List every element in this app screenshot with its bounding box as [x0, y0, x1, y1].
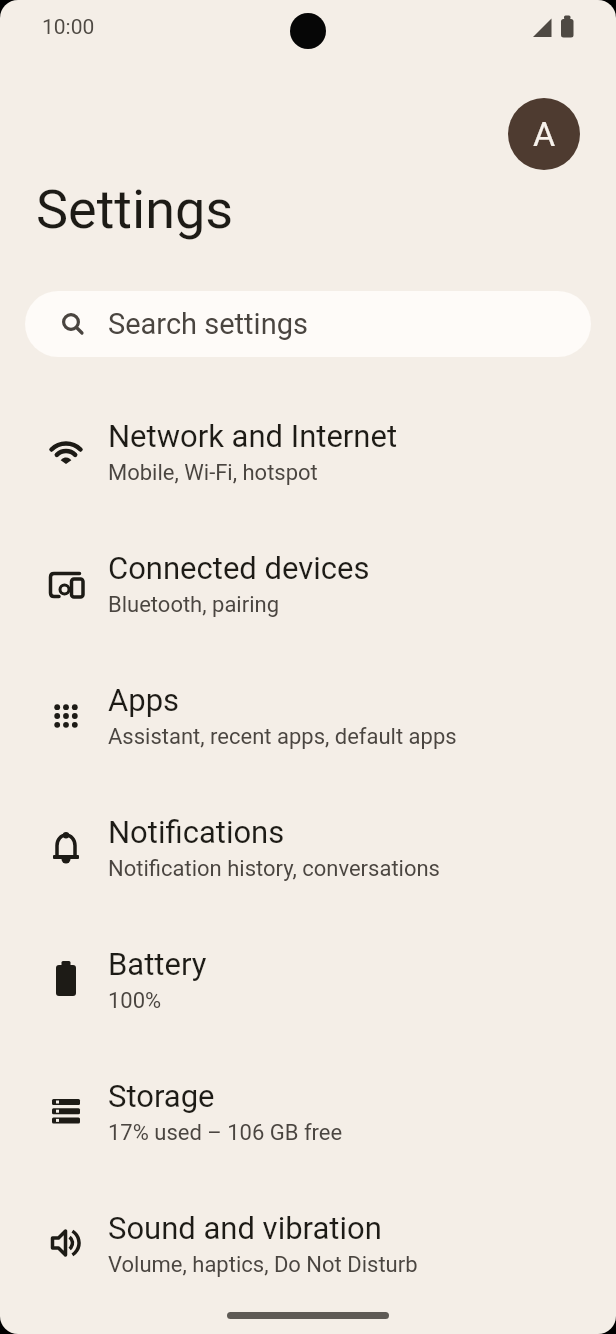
- staticText: Bluetooth, pairing: [108, 592, 280, 618]
- staticText: Settings: [36, 178, 234, 241]
- button[interactable]: Notifications: [0, 782, 616, 914]
- button[interactable]: Sound and vibration: [0, 1178, 616, 1310]
- staticText: Apps: [108, 682, 180, 718]
- staticText: Network and Internet: [108, 418, 398, 454]
- staticText: Connected devices: [108, 550, 370, 586]
- staticText: 17% used – 106 GB free: [108, 1120, 343, 1146]
- staticText: Battery: [108, 946, 207, 982]
- button[interactable]: Search settings: [25, 291, 591, 357]
- staticText: A: [533, 114, 556, 154]
- staticText: Sound and vibration: [108, 1210, 382, 1246]
- staticText: Assistant, recent apps, default apps: [108, 724, 457, 750]
- button[interactable]: Storage: [0, 1046, 616, 1178]
- button[interactable]: Battery: [0, 914, 616, 1046]
- staticText: Search settings: [108, 307, 308, 341]
- staticText: Mobile, Wi-Fi, hotspot: [108, 460, 318, 486]
- staticText: Volume, haptics, Do Not Disturb: [108, 1252, 418, 1278]
- staticText: Notification history, conversations: [108, 856, 440, 882]
- button[interactable]: Network and Internet: [0, 386, 616, 518]
- staticText: Notifications: [108, 814, 285, 850]
- staticText: 10:00: [42, 15, 95, 40]
- button[interactable]: Apps: [0, 650, 616, 782]
- button[interactable]: Connected devices: [0, 518, 616, 650]
- button[interactable]: A: [508, 98, 580, 170]
- staticText: 100%: [108, 988, 162, 1014]
- staticText: Storage: [108, 1078, 215, 1114]
